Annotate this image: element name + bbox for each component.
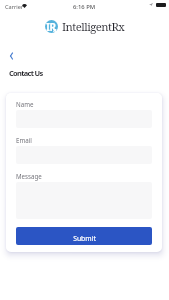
staticText: IR	[46, 20, 56, 33]
staticText: Name	[16, 100, 34, 108]
button[interactable]: Back	[2, 47, 20, 65]
staticText: IntelligentRx	[62, 19, 125, 34]
staticText: Contact Us	[9, 68, 43, 78]
staticText: x	[53, 26, 57, 34]
staticText: Carrier	[5, 3, 24, 11]
staticText: 6:16 PM	[73, 3, 96, 11]
staticText: Email	[16, 136, 32, 144]
staticText: Submit	[73, 234, 96, 243]
button[interactable]: Submit	[16, 227, 152, 245]
staticText: Message	[16, 172, 42, 180]
